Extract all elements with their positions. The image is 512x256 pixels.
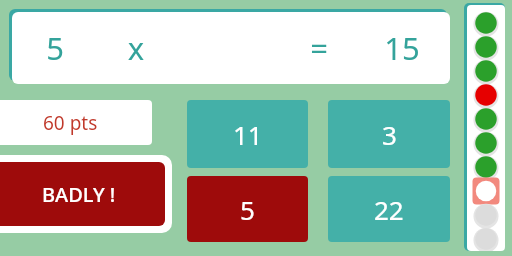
button[interactable]: 5 xyxy=(187,176,308,242)
other: Question marker xyxy=(471,179,501,203)
button[interactable]: 3 xyxy=(328,100,450,168)
button[interactable]: 5 xyxy=(12,12,450,84)
other: Question marker xyxy=(471,11,501,35)
button[interactable]: 11 xyxy=(187,100,308,168)
staticText: BADLY ! xyxy=(42,181,116,208)
staticText: 5 xyxy=(240,192,255,227)
other: Question marker xyxy=(471,59,501,83)
staticText: 5 xyxy=(12,27,98,69)
other: Question marker xyxy=(471,227,501,251)
button[interactable]: 60 pts xyxy=(0,100,152,145)
other: Question marker xyxy=(471,131,501,155)
staticText: 11 xyxy=(233,117,263,152)
staticText: 3 xyxy=(382,117,397,152)
other: Question marker xyxy=(471,83,501,107)
button[interactable]: BADLY ! xyxy=(0,162,165,226)
staticText: 60 pts xyxy=(43,110,98,136)
other: Question marker xyxy=(471,107,501,131)
other: Question marker xyxy=(471,35,501,59)
staticText: = xyxy=(284,27,354,69)
other: Question marker xyxy=(471,203,501,227)
staticText: 15 xyxy=(354,27,450,69)
staticText: 22 xyxy=(374,192,404,227)
button[interactable]: 22 xyxy=(328,176,450,242)
other: Question marker xyxy=(471,155,501,179)
staticText: x xyxy=(98,27,174,69)
